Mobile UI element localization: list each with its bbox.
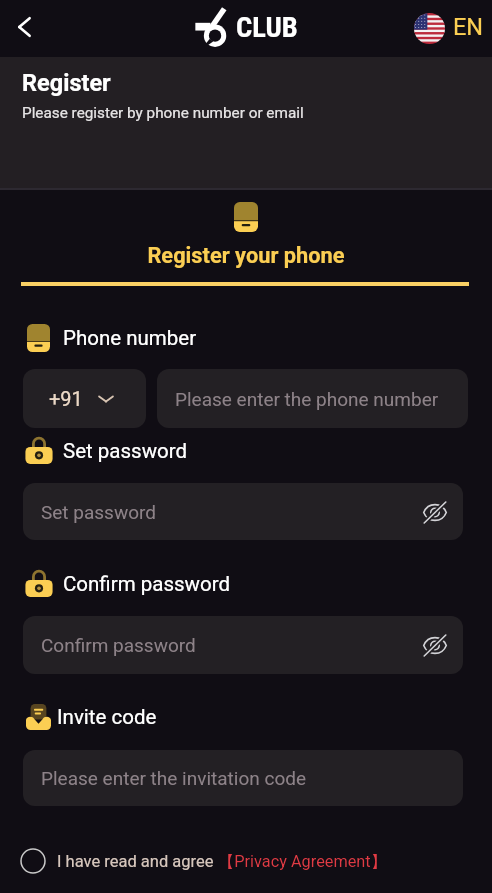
button[interactable]: EN	[414, 11, 484, 42]
staticText: I have read and agree	[57, 852, 214, 871]
button[interactable]: Show password	[421, 631, 449, 659]
staticText: Please enter the phone number	[175, 388, 439, 410]
staticText: Please enter the invitation code	[41, 767, 307, 789]
staticText: EN	[453, 13, 484, 41]
staticText: Confirm password	[41, 634, 196, 656]
staticText: Set password	[63, 439, 188, 463]
button[interactable]: Back	[3, 5, 47, 49]
staticText: CLUB	[236, 11, 298, 44]
staticText: 【Privacy Agreement】	[218, 851, 387, 872]
button[interactable]: I have read and agree	[20, 848, 387, 874]
staticText: Confirm password	[63, 572, 230, 596]
staticText: Set password	[41, 501, 156, 523]
staticText: Register	[22, 69, 111, 97]
button[interactable]: Show password	[421, 498, 449, 526]
staticText: Please register by phone number or email	[22, 104, 304, 122]
staticText: Invite code	[57, 705, 157, 729]
button[interactable]: +91	[23, 369, 146, 428]
button[interactable]: Confirm password	[23, 616, 463, 674]
staticText: Register your phone	[0, 243, 492, 269]
button[interactable]: Set password	[23, 483, 463, 540]
staticText: Phone number	[63, 326, 197, 350]
staticText: +91	[49, 387, 83, 410]
button[interactable]: Please enter the invitation code	[23, 750, 463, 806]
button[interactable]: Please enter the phone number	[157, 369, 468, 428]
